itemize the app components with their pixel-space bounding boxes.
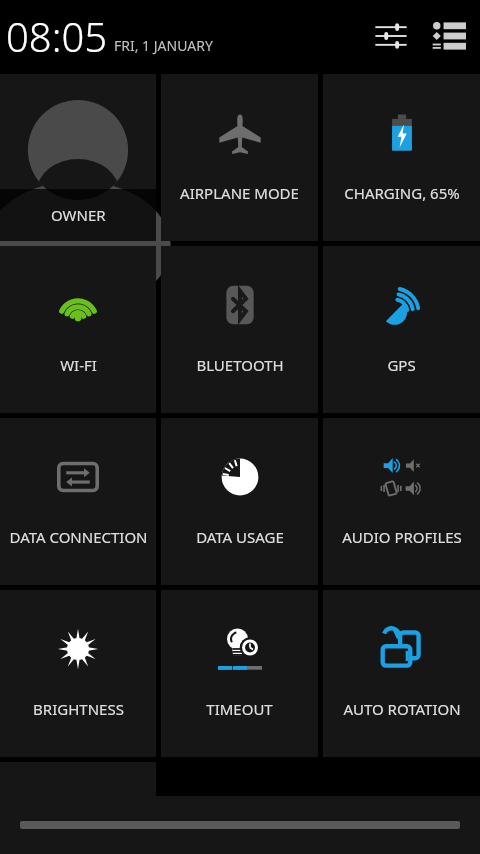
button[interactable]: DATA USAGE xyxy=(161,418,318,585)
button[interactable]: AUTO ROTATION xyxy=(323,590,480,757)
button[interactable] xyxy=(0,762,156,822)
staticText: BLUETOOTH xyxy=(196,355,284,375)
button[interactable]: CHARGING, 65% xyxy=(323,74,480,241)
staticText: CHARGING, 65% xyxy=(344,183,460,203)
button[interactable]: BLUETOOTH xyxy=(161,246,318,413)
staticText: AUDIO PROFILES xyxy=(342,527,462,547)
button[interactable]: Settings xyxy=(368,13,414,59)
staticText: WI-FI xyxy=(60,355,97,375)
button[interactable]: Notifications xyxy=(426,13,472,59)
button[interactable]: WI-FI xyxy=(0,246,156,413)
button[interactable]: AIRPLANE MODE xyxy=(161,74,318,241)
button[interactable]: BRIGHTNESS xyxy=(0,590,156,757)
staticText: OWNER xyxy=(51,205,106,225)
staticText: AIRPLANE MODE xyxy=(180,183,299,203)
staticText: 08:05 xyxy=(6,9,108,63)
staticText: DATA USAGE xyxy=(196,527,284,547)
button[interactable]: OWNER xyxy=(0,74,156,241)
staticText: BRIGHTNESS xyxy=(33,699,124,719)
button[interactable]: TIMEOUT xyxy=(161,590,318,757)
staticText: AUTO ROTATION xyxy=(343,699,461,719)
staticText: DATA CONNECTION xyxy=(9,527,148,547)
staticText: FRI, 1 JANUARY xyxy=(114,36,213,55)
button[interactable]: GPS xyxy=(323,246,480,413)
button[interactable]: AUDIO PROFILES xyxy=(323,418,480,585)
staticText: TIMEOUT xyxy=(206,699,273,719)
staticText: GPS xyxy=(387,355,416,375)
button[interactable]: DATA CONNECTION xyxy=(0,418,156,585)
